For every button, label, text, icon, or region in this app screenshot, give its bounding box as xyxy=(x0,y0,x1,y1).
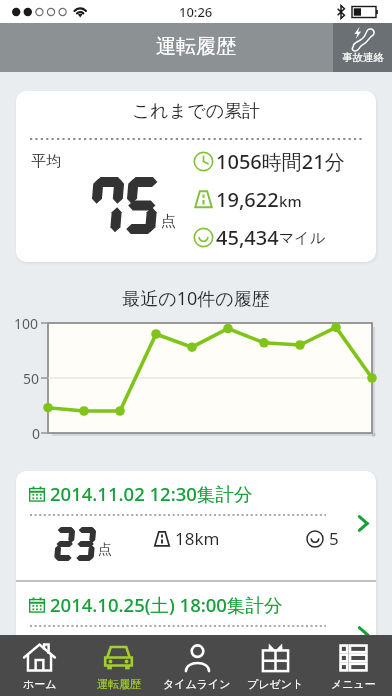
staticText: km xyxy=(279,191,302,211)
staticText: 5 xyxy=(329,527,339,550)
staticText: 平均 xyxy=(31,152,61,171)
staticText: 100 xyxy=(14,314,39,333)
other: Details xyxy=(354,625,373,644)
staticText: 運転履歴 xyxy=(97,677,141,691)
staticText: 50 xyxy=(23,369,40,388)
staticText: プレゼント xyxy=(247,677,304,691)
button[interactable]: メニュー xyxy=(314,635,392,696)
staticText: 点 xyxy=(161,212,176,231)
staticText: 事故連絡 xyxy=(342,51,384,64)
staticText: 19,622 xyxy=(216,186,279,213)
staticText: タイムライン xyxy=(163,677,231,691)
staticText: 22km xyxy=(175,638,220,651)
staticText: 最近の10件の履歴 xyxy=(0,286,392,311)
other: Details xyxy=(354,514,373,533)
button[interactable]: 運転履歴 xyxy=(79,635,158,696)
staticText: 運転履歴 xyxy=(156,34,236,59)
button[interactable]: 2014.11.02 12:30集計分 xyxy=(16,471,376,580)
staticText: これまでの累計 xyxy=(16,100,376,123)
staticText: 2014.10.25(土) 18:00集計分 xyxy=(50,592,283,617)
staticText: マイル xyxy=(279,229,326,248)
staticText: 2014.11.02 12:30集計分 xyxy=(50,481,253,506)
staticText: 10:26 xyxy=(179,3,213,21)
staticText: 1056時間21分 xyxy=(216,148,345,175)
staticText: 45,434 xyxy=(216,224,279,251)
button[interactable]: タイムライン xyxy=(158,635,236,696)
staticText: メニュー xyxy=(331,677,376,691)
button[interactable]: 2014.10.25(土) 18:00集計分 xyxy=(16,582,376,651)
staticText: 点 xyxy=(98,541,112,559)
staticText: ホーム xyxy=(23,677,57,691)
button[interactable]: ホーム xyxy=(0,635,79,696)
button[interactable]: プレゼント xyxy=(236,635,314,696)
button[interactable]: 事故連絡 xyxy=(333,23,392,72)
staticText: 0 xyxy=(32,424,41,443)
staticText: 18km xyxy=(175,527,220,550)
